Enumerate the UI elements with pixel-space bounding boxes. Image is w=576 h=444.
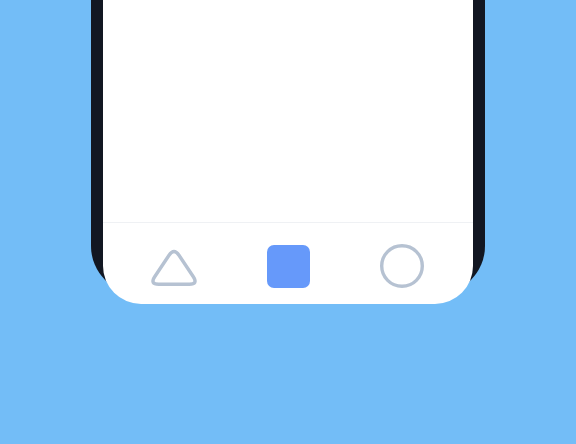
button[interactable]: Square	[236, 238, 340, 294]
button[interactable]: Triangle	[122, 238, 226, 294]
button[interactable]: Circle	[350, 238, 454, 294]
